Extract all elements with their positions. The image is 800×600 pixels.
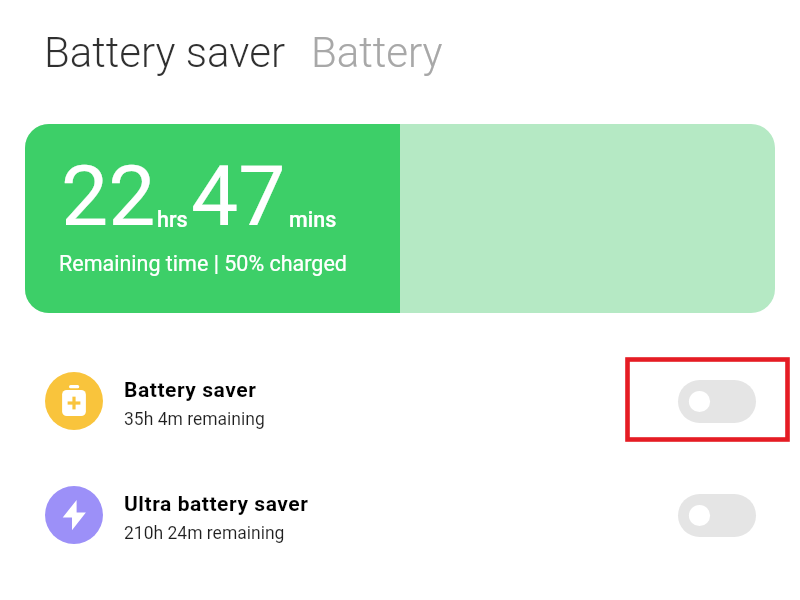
staticText: Battery saver [44,28,286,77]
staticText: Remaining time | 50% charged [59,251,347,276]
staticText: 47 [191,147,286,245]
staticText: 22 [61,147,156,245]
button[interactable]: Battery [311,28,443,77]
staticText: 35h 4m remaining [124,409,265,430]
staticText: 210h 24m remaining [124,523,285,544]
button[interactable]: Battery saver [44,28,286,77]
button[interactable]: Ultra battery saver [0,472,800,558]
button[interactable]: 22 [25,124,775,313]
button[interactable]: Battery saver [0,358,800,444]
button[interactable]: Ultra battery saver switch [678,494,756,537]
staticText: Ultra battery saver [124,492,309,517]
staticText: mins [289,207,337,232]
staticText: hrs [157,207,188,232]
staticText: Battery saver [124,378,257,403]
staticText: Battery [311,28,443,77]
button[interactable]: Battery saver switch [678,380,756,423]
